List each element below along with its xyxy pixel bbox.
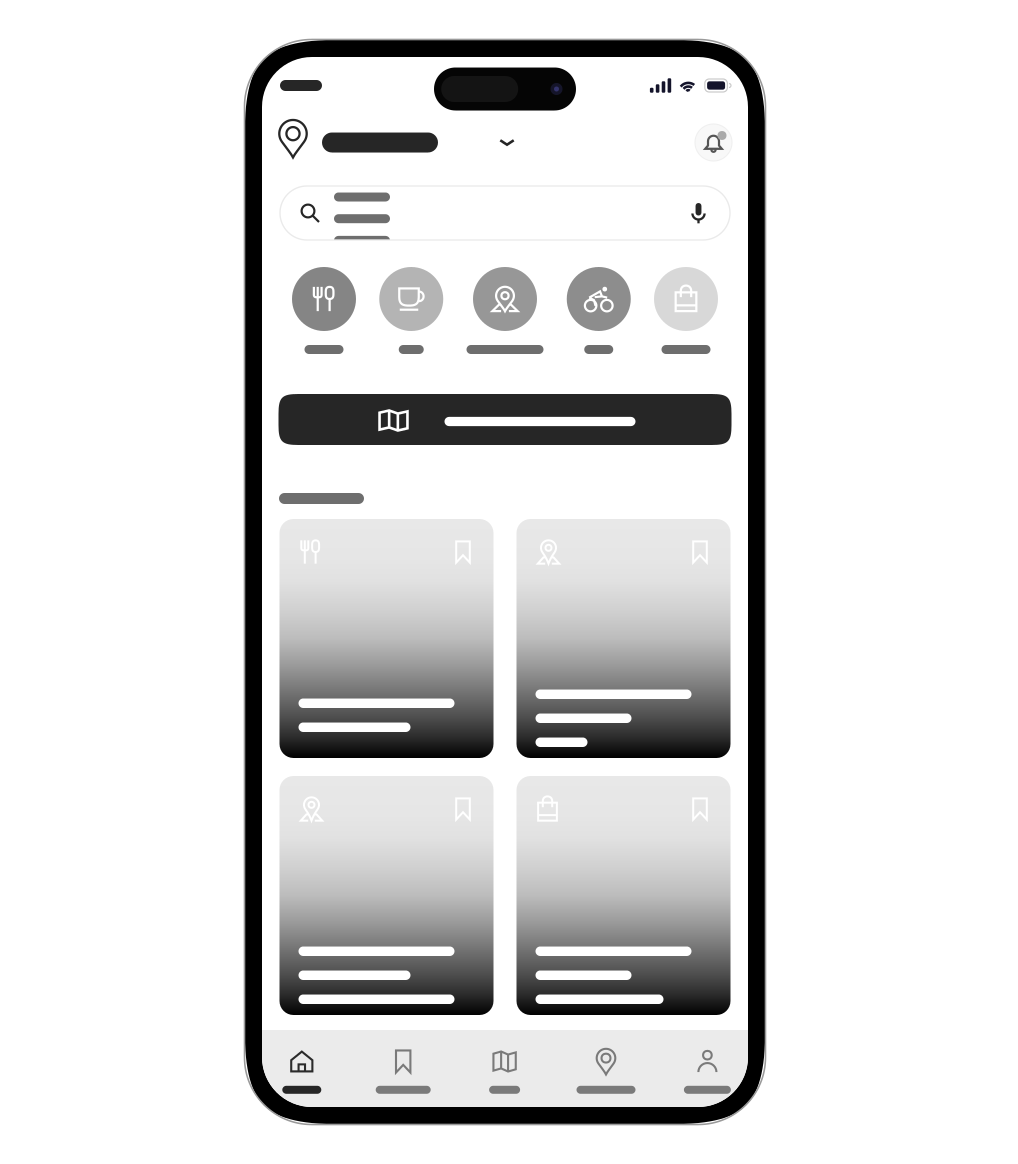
- button[interactable]: Search: [280, 186, 730, 240]
- button[interactable]: Cafes: [379, 267, 443, 354]
- button[interactable]: Map: [474, 1030, 536, 1107]
- button[interactable]: Cycling: [567, 267, 631, 354]
- button[interactable]: [279, 519, 493, 758]
- button[interactable]: Saved: [372, 1030, 434, 1107]
- button[interactable]: [279, 776, 493, 1015]
- button[interactable]: [279, 123, 515, 161]
- button[interactable]: Open map: [278, 394, 731, 445]
- button[interactable]: Attractions: [466, 267, 543, 354]
- button[interactable]: Restaurants: [292, 267, 356, 354]
- button[interactable]: Notifications: [695, 124, 732, 161]
- button[interactable]: [516, 776, 730, 1015]
- button[interactable]: Home: [271, 1030, 333, 1107]
- button[interactable]: Shopping: [654, 267, 718, 354]
- button[interactable]: Profile: [676, 1030, 738, 1107]
- button[interactable]: Nearby: [575, 1030, 637, 1107]
- button[interactable]: [516, 519, 730, 758]
